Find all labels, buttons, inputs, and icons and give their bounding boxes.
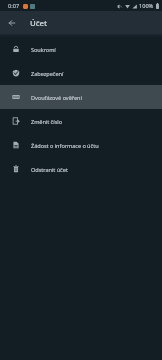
button[interactable]: Změnit číslo [0,109,162,133]
staticText: Žádost o informace o účtu [31,142,99,150]
staticText: Odstranit účet [31,166,68,174]
staticText: Dvoufázové ověření [31,94,82,102]
staticText: 0:07 [8,2,20,10]
button[interactable]: Dvoufázové ověření [0,85,162,109]
staticText: 100% [139,2,154,10]
button[interactable]: Back [4,15,19,30]
staticText: Změnit číslo [31,118,62,126]
button[interactable]: Zabezpečení [0,61,162,85]
button[interactable]: Soukromí [0,37,162,61]
staticText: Zabezpečení [31,70,64,78]
staticText: Účet [30,18,48,29]
button[interactable]: Žádost o informace o účtu [0,133,162,157]
staticText: Soukromí [31,46,56,54]
button[interactable]: Odstranit účet [0,157,162,181]
